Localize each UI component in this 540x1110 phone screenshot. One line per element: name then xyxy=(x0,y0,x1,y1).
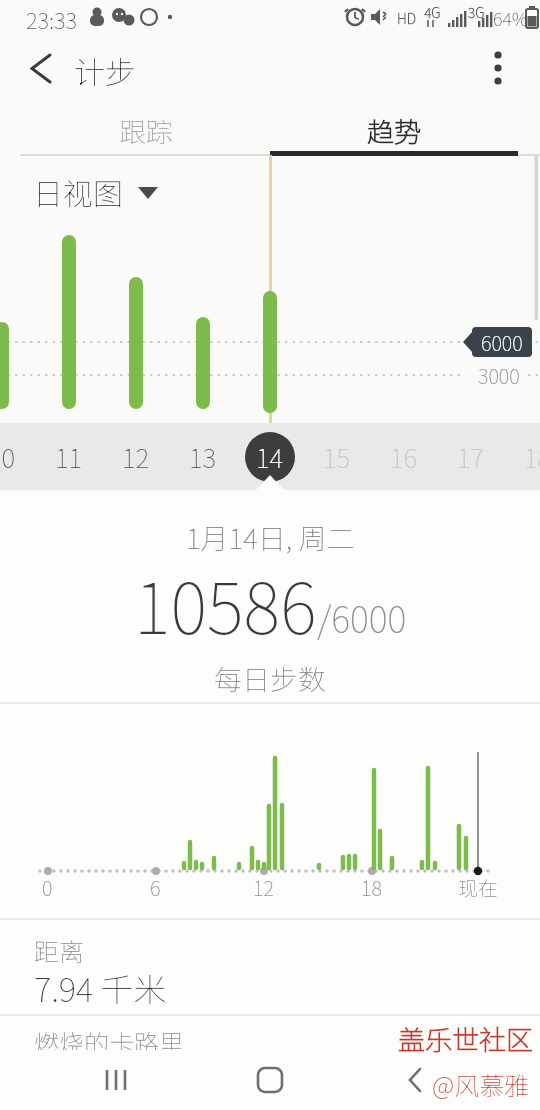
staticText: 3000 xyxy=(478,361,520,390)
button[interactable]: 13 xyxy=(170,423,236,490)
button[interactable]: 燃烧的卡路里 xyxy=(0,1016,540,1062)
staticText: 1月14日, 周二 xyxy=(186,517,355,558)
staticText: 跟踪 xyxy=(119,111,173,150)
button[interactable]: 跟踪 xyxy=(22,104,270,156)
button[interactable] xyxy=(476,46,520,90)
button[interactable] xyxy=(88,1054,148,1106)
staticText: 10 xyxy=(0,438,16,476)
staticText: @风慕雅 xyxy=(432,1066,530,1102)
staticText: 18 xyxy=(361,873,382,902)
staticText: 10586 xyxy=(134,553,317,643)
staticText: 16 xyxy=(390,438,418,476)
staticText: 7.94 千米 xyxy=(34,964,167,1012)
staticText: 计步 xyxy=(74,48,136,93)
staticText: 日视图 xyxy=(33,170,123,213)
staticText: HD xyxy=(397,8,417,28)
button[interactable]: 15 xyxy=(304,423,370,490)
staticText: 12 xyxy=(122,438,150,476)
staticText: 11 xyxy=(55,438,83,476)
staticText: 每日步数 xyxy=(214,658,327,699)
staticText: 燃烧的卡路里 xyxy=(34,1024,185,1060)
staticText: /6000 xyxy=(317,591,407,643)
button[interactable] xyxy=(392,1054,436,1106)
staticText: 12 xyxy=(253,873,274,902)
button[interactable]: 12 xyxy=(103,423,169,490)
staticText: 15 xyxy=(323,438,351,476)
staticText: 23:33 xyxy=(26,3,77,35)
staticText: 18 xyxy=(524,438,540,476)
button[interactable]: 14 xyxy=(245,432,295,482)
button[interactable]: 17 xyxy=(438,423,504,490)
button[interactable]: 18 xyxy=(505,423,540,490)
staticText: 现在 xyxy=(458,873,498,902)
button[interactable]: 11 xyxy=(36,423,102,490)
staticText: 14 xyxy=(256,438,284,476)
button[interactable]: 距离 xyxy=(0,920,540,1014)
staticText: 3G xyxy=(468,2,485,22)
staticText: 趋势 xyxy=(367,111,421,150)
staticText: 0 xyxy=(42,873,53,902)
staticText: 17 xyxy=(457,438,485,476)
staticText: 64% xyxy=(493,5,528,31)
button[interactable] xyxy=(240,1054,300,1106)
button[interactable] xyxy=(20,46,64,90)
staticText: 盖乐世社区 xyxy=(398,1019,533,1058)
button[interactable]: 趋势 xyxy=(270,104,518,156)
staticText: 6000 xyxy=(481,328,523,357)
staticText: 4G xyxy=(424,2,441,22)
button[interactable]: 16 xyxy=(371,423,437,490)
staticText: 距离 xyxy=(34,932,85,968)
staticText: 13 xyxy=(189,438,217,476)
button[interactable]: 日视图 xyxy=(30,168,166,212)
button[interactable]: 10 xyxy=(0,423,35,490)
staticText: 6 xyxy=(150,873,161,902)
